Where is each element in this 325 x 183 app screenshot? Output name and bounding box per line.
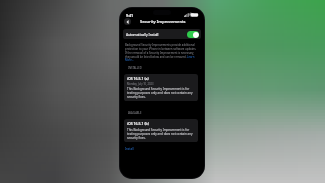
staticText: Background Security Improvements provide… [125,43,200,50]
staticText: Install [125,147,134,151]
staticText: Monday, July 10, 2023 [127,82,154,86]
button[interactable]: Automatically Install [123,29,201,39]
staticText: If the removal of a Security Improvement… [125,51,200,61]
staticText: This Background Security Improvement is … [127,128,195,140]
staticText: This Background Security Improvement is … [127,87,195,99]
staticText: AVAILABLE [128,111,142,115]
staticText: 9:41 [126,13,134,18]
staticText: iOS 16.5.1 (a) [127,76,149,81]
staticText: INSTALLED [128,66,142,70]
button[interactable]: Install [125,147,134,151]
staticText: iOS 16.5.1 (b) [127,121,149,126]
button[interactable]: Back [124,18,131,25]
staticText: Automatically Install [126,32,159,37]
staticText: Security Improvements [140,19,186,24]
